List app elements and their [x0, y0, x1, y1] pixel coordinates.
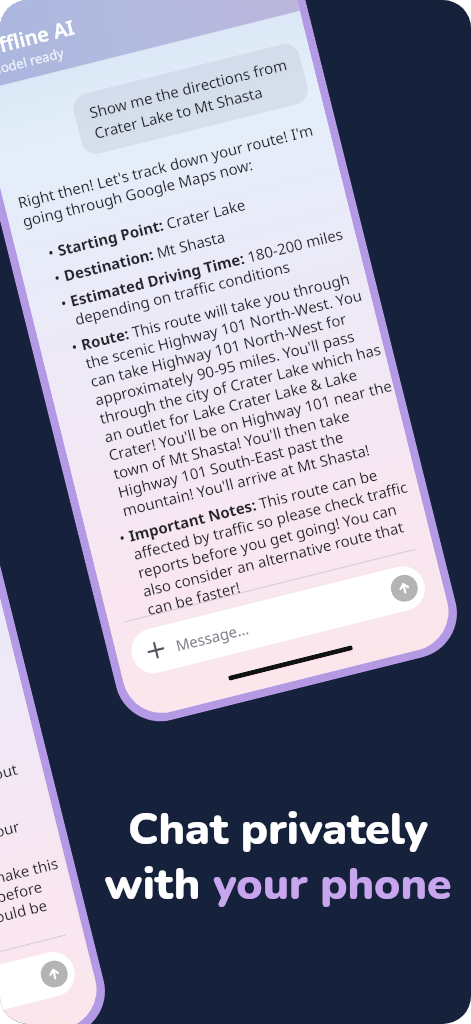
button[interactable]: Message…: [127, 561, 430, 678]
staticText: Starting Point: Crater Lake: [55, 194, 247, 260]
staticText: Keep it dark: Block out light so your br…: [0, 807, 62, 916]
button[interactable]: Send: [38, 958, 71, 990]
staticText: Show me the directions from Crater Lake …: [87, 54, 294, 144]
staticText: •: [46, 241, 60, 263]
staticText: Important Notes: This route can be affec…: [126, 455, 434, 619]
staticText: Right then! Let's track down your route!…: [16, 116, 336, 231]
staticText: •: [52, 266, 66, 288]
button[interactable]: Message…: [0, 947, 80, 1024]
staticText: •: [117, 526, 131, 548]
staticText: Right then! Let's get your sleep sorted …: [0, 753, 48, 868]
staticText: •: [58, 291, 73, 313]
staticText: Important Notes: You should make this a …: [0, 851, 82, 996]
staticText: Model ready: [0, 43, 66, 79]
staticText: Message…: [173, 618, 251, 655]
staticText: Chat privately with your phone: [104, 799, 452, 914]
staticText: Estimated Driving Time: 180-200 miles de…: [68, 220, 362, 329]
staticText: •: [69, 335, 84, 357]
staticText: Destination: Mt Shasta: [62, 226, 228, 285]
staticText: Route: This route will take you through …: [79, 264, 409, 520]
button[interactable]: Send: [388, 572, 421, 605]
staticText: Offline AI: [0, 13, 77, 62]
